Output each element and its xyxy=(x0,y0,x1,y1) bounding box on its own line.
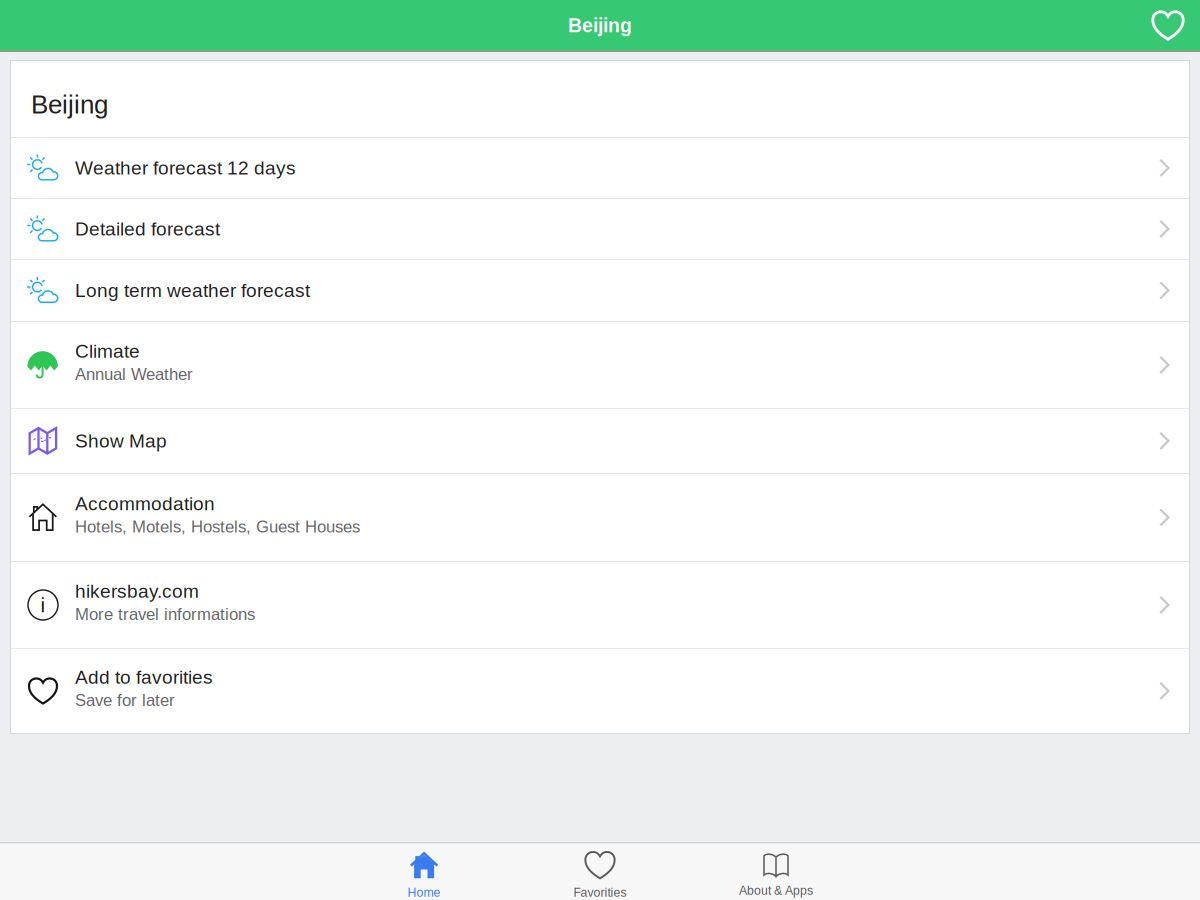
button[interactable]: Weather forecast 12 days xyxy=(11,138,1189,198)
staticText: Save for later xyxy=(75,691,175,709)
staticText: Home xyxy=(407,886,440,899)
staticText: Accommodation xyxy=(75,493,215,514)
staticText: Favorities xyxy=(573,886,626,899)
button[interactable]: Climate xyxy=(11,322,1189,408)
button[interactable]: Favorities xyxy=(512,844,688,900)
button[interactable]: Home xyxy=(336,844,512,900)
button[interactable]: i xyxy=(11,562,1189,648)
staticText: Annual Weather xyxy=(75,365,193,383)
staticText: About & Apps xyxy=(739,884,813,897)
button[interactable]: Detailed forecast xyxy=(11,199,1189,259)
staticText: i xyxy=(40,593,45,617)
staticText: Detailed forecast xyxy=(75,218,220,240)
staticText: Beijing xyxy=(568,15,632,36)
staticText: More travel informations xyxy=(75,605,255,623)
staticText: Show Map xyxy=(75,430,167,452)
button[interactable]: Add to favorites xyxy=(1136,0,1200,51)
button[interactable]: Accommodation xyxy=(11,474,1189,561)
button[interactable]: About & Apps xyxy=(688,844,864,900)
button[interactable]: Add to favorities xyxy=(11,649,1189,733)
staticText: Hotels, Motels, Hostels, Guest Houses xyxy=(75,517,360,536)
button[interactable]: Long term weather forecast xyxy=(11,260,1189,321)
staticText: Long term weather forecast xyxy=(75,280,310,301)
staticText: Add to favorities xyxy=(75,666,213,688)
button[interactable]: Show Map xyxy=(11,409,1189,473)
staticText: Weather forecast 12 days xyxy=(75,157,296,179)
staticText: Beijing xyxy=(31,90,108,119)
staticText: Climate xyxy=(75,340,140,362)
staticText: hikersbay.com xyxy=(75,580,199,602)
